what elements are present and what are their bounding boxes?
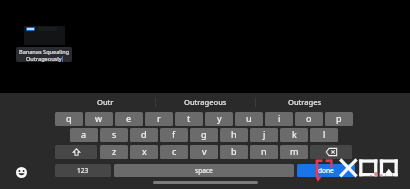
button[interactable]: j	[250, 128, 278, 142]
button[interactable]: w	[85, 112, 113, 126]
staticText: a	[81, 128, 87, 140]
button[interactable]: Emoji	[14, 165, 28, 179]
button[interactable]: Backspace	[310, 145, 352, 159]
staticText: q	[66, 112, 72, 124]
button[interactable]: z	[100, 145, 128, 159]
button[interactable]: n	[250, 145, 278, 159]
button[interactable]: space	[114, 164, 294, 177]
staticText: k	[292, 128, 297, 140]
button[interactable]: Outrages	[255, 93, 355, 112]
staticText: i	[278, 112, 281, 124]
staticText: o	[306, 112, 312, 124]
staticText: v	[202, 145, 207, 157]
button[interactable]: v	[190, 145, 218, 159]
staticText: h	[231, 128, 237, 140]
staticText: g	[201, 128, 207, 140]
button[interactable]: r	[145, 112, 173, 126]
staticText: l	[323, 128, 326, 140]
button[interactable]: q	[55, 112, 83, 126]
button[interactable]: t	[175, 112, 203, 126]
staticText: space	[195, 166, 213, 175]
button[interactable]: Outrageous	[155, 93, 255, 112]
button[interactable]: s	[100, 128, 128, 142]
button[interactable]: p	[325, 112, 353, 126]
button[interactable]: Shift	[55, 145, 97, 159]
staticText: s	[112, 128, 117, 140]
button[interactable]: Outr	[55, 93, 155, 112]
staticText: n	[261, 145, 267, 157]
staticText: j	[263, 128, 266, 140]
staticText: c	[172, 145, 177, 157]
button[interactable]: o	[295, 112, 323, 126]
staticText: p	[336, 112, 342, 124]
staticText: b	[231, 145, 237, 157]
staticText: f	[172, 128, 176, 140]
staticText: Outrages	[288, 97, 322, 107]
button[interactable]: y	[205, 112, 233, 126]
button[interactable]: a	[70, 128, 98, 142]
button[interactable]: m	[280, 145, 308, 159]
button[interactable]: f	[160, 128, 188, 142]
staticText: Outr	[97, 97, 114, 107]
staticText: u	[246, 112, 252, 124]
button[interactable]: k	[280, 128, 308, 142]
staticText: r	[157, 112, 161, 124]
button[interactable]: 123	[55, 164, 111, 177]
button[interactable]: d	[130, 128, 158, 142]
button[interactable]: done	[297, 164, 355, 177]
button[interactable]: c	[160, 145, 188, 159]
button[interactable]: h	[220, 128, 248, 142]
button[interactable]: u	[235, 112, 263, 126]
button[interactable]: e	[115, 112, 143, 126]
button[interactable]: i	[265, 112, 293, 126]
staticText: t	[187, 112, 191, 124]
staticText: Outrageously	[26, 55, 62, 62]
button[interactable]: Bananas Squealing	[16, 47, 72, 62]
staticText: Outrageous	[184, 97, 227, 107]
staticText: y	[217, 112, 222, 124]
button[interactable]: x	[130, 145, 158, 159]
staticText: Bananas Squealing	[19, 48, 70, 55]
staticText: w	[95, 112, 103, 124]
button[interactable]: b	[220, 145, 248, 159]
staticText: done	[318, 166, 334, 175]
staticText: d	[141, 128, 147, 140]
staticText: 123	[77, 166, 89, 175]
staticText: e	[126, 112, 132, 124]
staticText: m	[290, 145, 299, 157]
button[interactable]: l	[310, 128, 338, 142]
button[interactable]	[24, 26, 65, 45]
staticText: z	[112, 145, 117, 157]
staticText: x	[142, 145, 147, 157]
button[interactable]: g	[190, 128, 218, 142]
